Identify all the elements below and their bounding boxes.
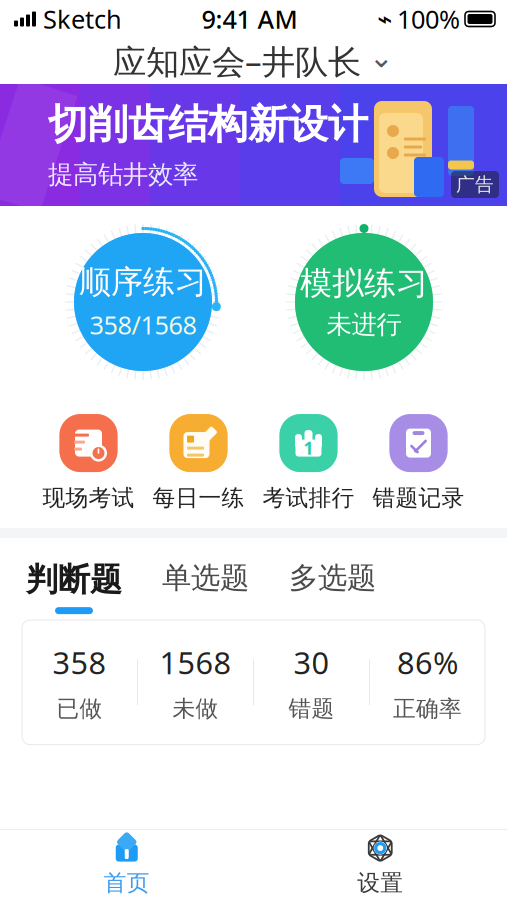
staticText: 现场考试 bbox=[42, 484, 134, 512]
staticText: 判断题 bbox=[26, 560, 122, 599]
button[interactable]: 模拟练习 bbox=[286, 224, 442, 380]
staticText: 顺序练习 bbox=[79, 262, 207, 302]
staticText: 模拟练习 bbox=[300, 264, 428, 303]
staticText: 正确率 bbox=[393, 695, 462, 722]
staticText: 多选题 bbox=[289, 560, 376, 596]
staticText: Sketch bbox=[43, 2, 122, 36]
staticText: 未进行 bbox=[326, 309, 401, 340]
staticText: 首页 bbox=[104, 869, 150, 897]
staticText: 考试排行 bbox=[262, 484, 354, 512]
button[interactable]: 现场考试 bbox=[33, 414, 143, 512]
button[interactable]: 应知应会–井队长 bbox=[0, 38, 507, 84]
staticText: 已做 bbox=[56, 695, 102, 722]
staticText: 1 bbox=[303, 437, 313, 460]
staticText: 1568 bbox=[159, 642, 231, 683]
staticText: 单选题 bbox=[162, 560, 249, 596]
staticText: 未做 bbox=[172, 695, 218, 722]
button[interactable]: 设置 bbox=[253, 830, 507, 900]
staticText: 应知应会–井队长 bbox=[113, 39, 361, 83]
button[interactable]: 判断题 bbox=[20, 560, 128, 614]
staticText: 错题 bbox=[288, 695, 334, 722]
button[interactable]: 多选题 bbox=[283, 560, 382, 611]
staticText: 86% bbox=[397, 642, 458, 683]
staticText: 358/1568 bbox=[89, 308, 196, 341]
staticText: 错题记录 bbox=[372, 484, 464, 512]
staticText: 30 bbox=[293, 642, 329, 683]
staticText: 提高钻井效率 bbox=[48, 159, 198, 190]
button[interactable]: 切削齿结构新设计 bbox=[0, 84, 507, 206]
staticText: 切削齿结构新设计 bbox=[48, 100, 368, 149]
button[interactable]: 错题记录 bbox=[363, 414, 473, 512]
staticText: 358 bbox=[52, 642, 106, 683]
button[interactable]: 每日一练 bbox=[143, 414, 253, 512]
button[interactable]: 1 bbox=[253, 414, 363, 512]
staticText: 设置 bbox=[357, 869, 403, 897]
staticText: ⌄ bbox=[369, 40, 394, 74]
button[interactable]: 顺序练习 bbox=[65, 224, 221, 380]
staticText: 9:41 AM bbox=[201, 2, 297, 36]
staticText: 100% bbox=[397, 2, 460, 36]
staticText: 每日一练 bbox=[152, 484, 244, 512]
button[interactable]: 单选题 bbox=[156, 560, 255, 611]
staticText: ⌁ bbox=[377, 5, 392, 33]
button[interactable]: 首页 bbox=[0, 830, 253, 900]
staticText: 广告 bbox=[456, 173, 494, 196]
